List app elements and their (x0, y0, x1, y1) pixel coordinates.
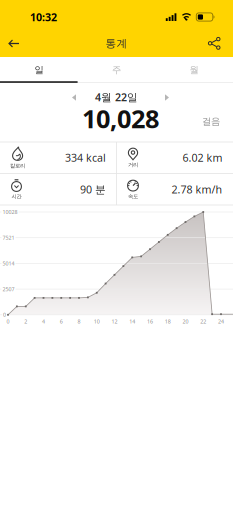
staticText: 10,028 (82, 102, 159, 135)
staticText: 4월 22일 (95, 90, 138, 104)
staticText: 14 (129, 318, 135, 325)
staticText: 속도 (128, 193, 138, 200)
staticText: 통계 (105, 37, 127, 50)
staticText: 6 (60, 318, 63, 325)
staticText: 16 (147, 318, 153, 325)
button[interactable]: 월 (155, 58, 233, 82)
staticText: 10 (94, 318, 100, 325)
staticText: 주 (112, 64, 121, 76)
staticText: 7521 (2, 234, 14, 241)
button[interactable]: Previous day (67, 90, 80, 105)
staticText: 거리 (128, 161, 138, 168)
staticText: 10:32 (30, 10, 57, 24)
button[interactable]: 일 (0, 58, 78, 82)
button[interactable]: Back (0, 39, 19, 47)
staticText: 12 (111, 318, 117, 325)
staticText: 0 (6, 318, 9, 325)
staticText: 22 (200, 318, 206, 325)
staticText: 0 (3, 311, 6, 318)
staticText: 월 (190, 64, 199, 76)
button[interactable]: 주 (78, 58, 155, 82)
staticText: 20 (182, 318, 188, 325)
staticText: 6.02 km (182, 150, 222, 165)
button[interactable]: Next day (160, 90, 173, 105)
staticText: 8 (77, 318, 80, 325)
staticText: 일 (34, 64, 43, 76)
staticText: 시간 (11, 193, 21, 200)
staticText: 2 (24, 318, 27, 325)
staticText: 걸음 (202, 116, 220, 127)
button[interactable]: Share (208, 37, 233, 50)
staticText: 24 (218, 318, 224, 325)
staticText: 5014 (2, 260, 14, 267)
staticText: 칼로리 (10, 162, 25, 169)
staticText: 334 kcal (65, 150, 106, 165)
staticText: 10028 (2, 208, 17, 216)
staticText: 18 (165, 318, 171, 325)
staticText: 4 (42, 318, 45, 325)
staticText: 2.78 km/h (171, 182, 222, 196)
staticText: 90 분 (80, 182, 106, 196)
staticText: 2507 (2, 286, 14, 293)
